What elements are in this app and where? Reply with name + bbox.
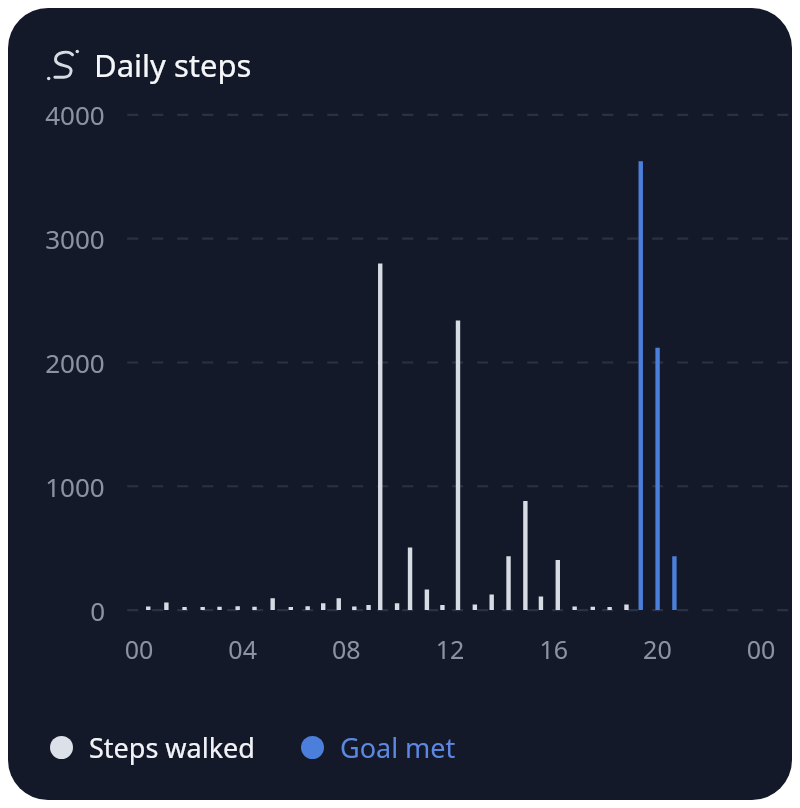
staticText: Daily steps	[94, 44, 252, 86]
button[interactable]: Steps	[46, 44, 252, 86]
button[interactable]: Goal met	[301, 729, 456, 766]
staticText: Steps walked	[89, 729, 255, 766]
button[interactable]: Steps walked	[50, 729, 255, 766]
other: Steps	[46, 48, 80, 82]
staticText: Goal met	[340, 729, 456, 766]
